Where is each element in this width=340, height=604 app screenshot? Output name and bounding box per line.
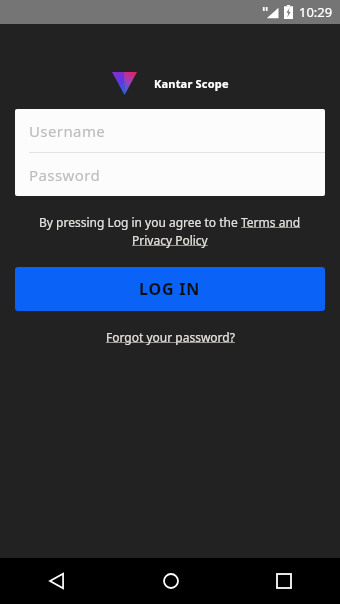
button[interactable]: Privacy Policy: [132, 232, 208, 248]
staticText: Username: [29, 121, 106, 141]
staticText: Privacy Policy: [132, 232, 208, 248]
staticText: Terms and: [241, 214, 301, 230]
button[interactable]: Password: [15, 153, 325, 196]
staticText: LOG IN: [139, 278, 201, 300]
button[interactable]: Home: [114, 558, 227, 604]
button[interactable]: Forgot your password?: [100, 327, 241, 347]
staticText: Kantar Scope: [154, 76, 229, 91]
button[interactable]: Username: [15, 109, 325, 152]
button[interactable]: LOG IN: [15, 267, 325, 311]
staticText: Password: [29, 165, 101, 185]
button[interactable]: Terms and: [241, 214, 301, 230]
staticText: By pressing Log in you agree to the: [39, 214, 241, 230]
staticText: 10:29: [299, 3, 333, 21]
button[interactable]: Back: [0, 558, 114, 604]
button[interactable]: Recent apps: [227, 558, 340, 604]
staticText: Forgot your password?: [106, 329, 235, 345]
